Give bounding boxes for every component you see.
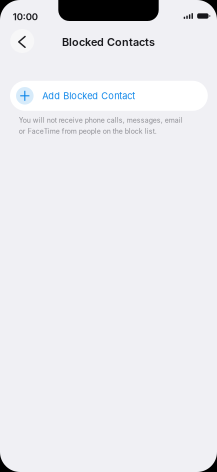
staticText: You will not receive phone calls, messag… (19, 116, 183, 135)
staticText: 10:00 (13, 11, 38, 22)
staticText: Blocked Contacts (62, 35, 155, 49)
button[interactable]: Add Blocked Contact (10, 81, 208, 111)
staticText: Add Blocked Contact (42, 90, 135, 101)
button[interactable]: Back (10, 29, 34, 53)
